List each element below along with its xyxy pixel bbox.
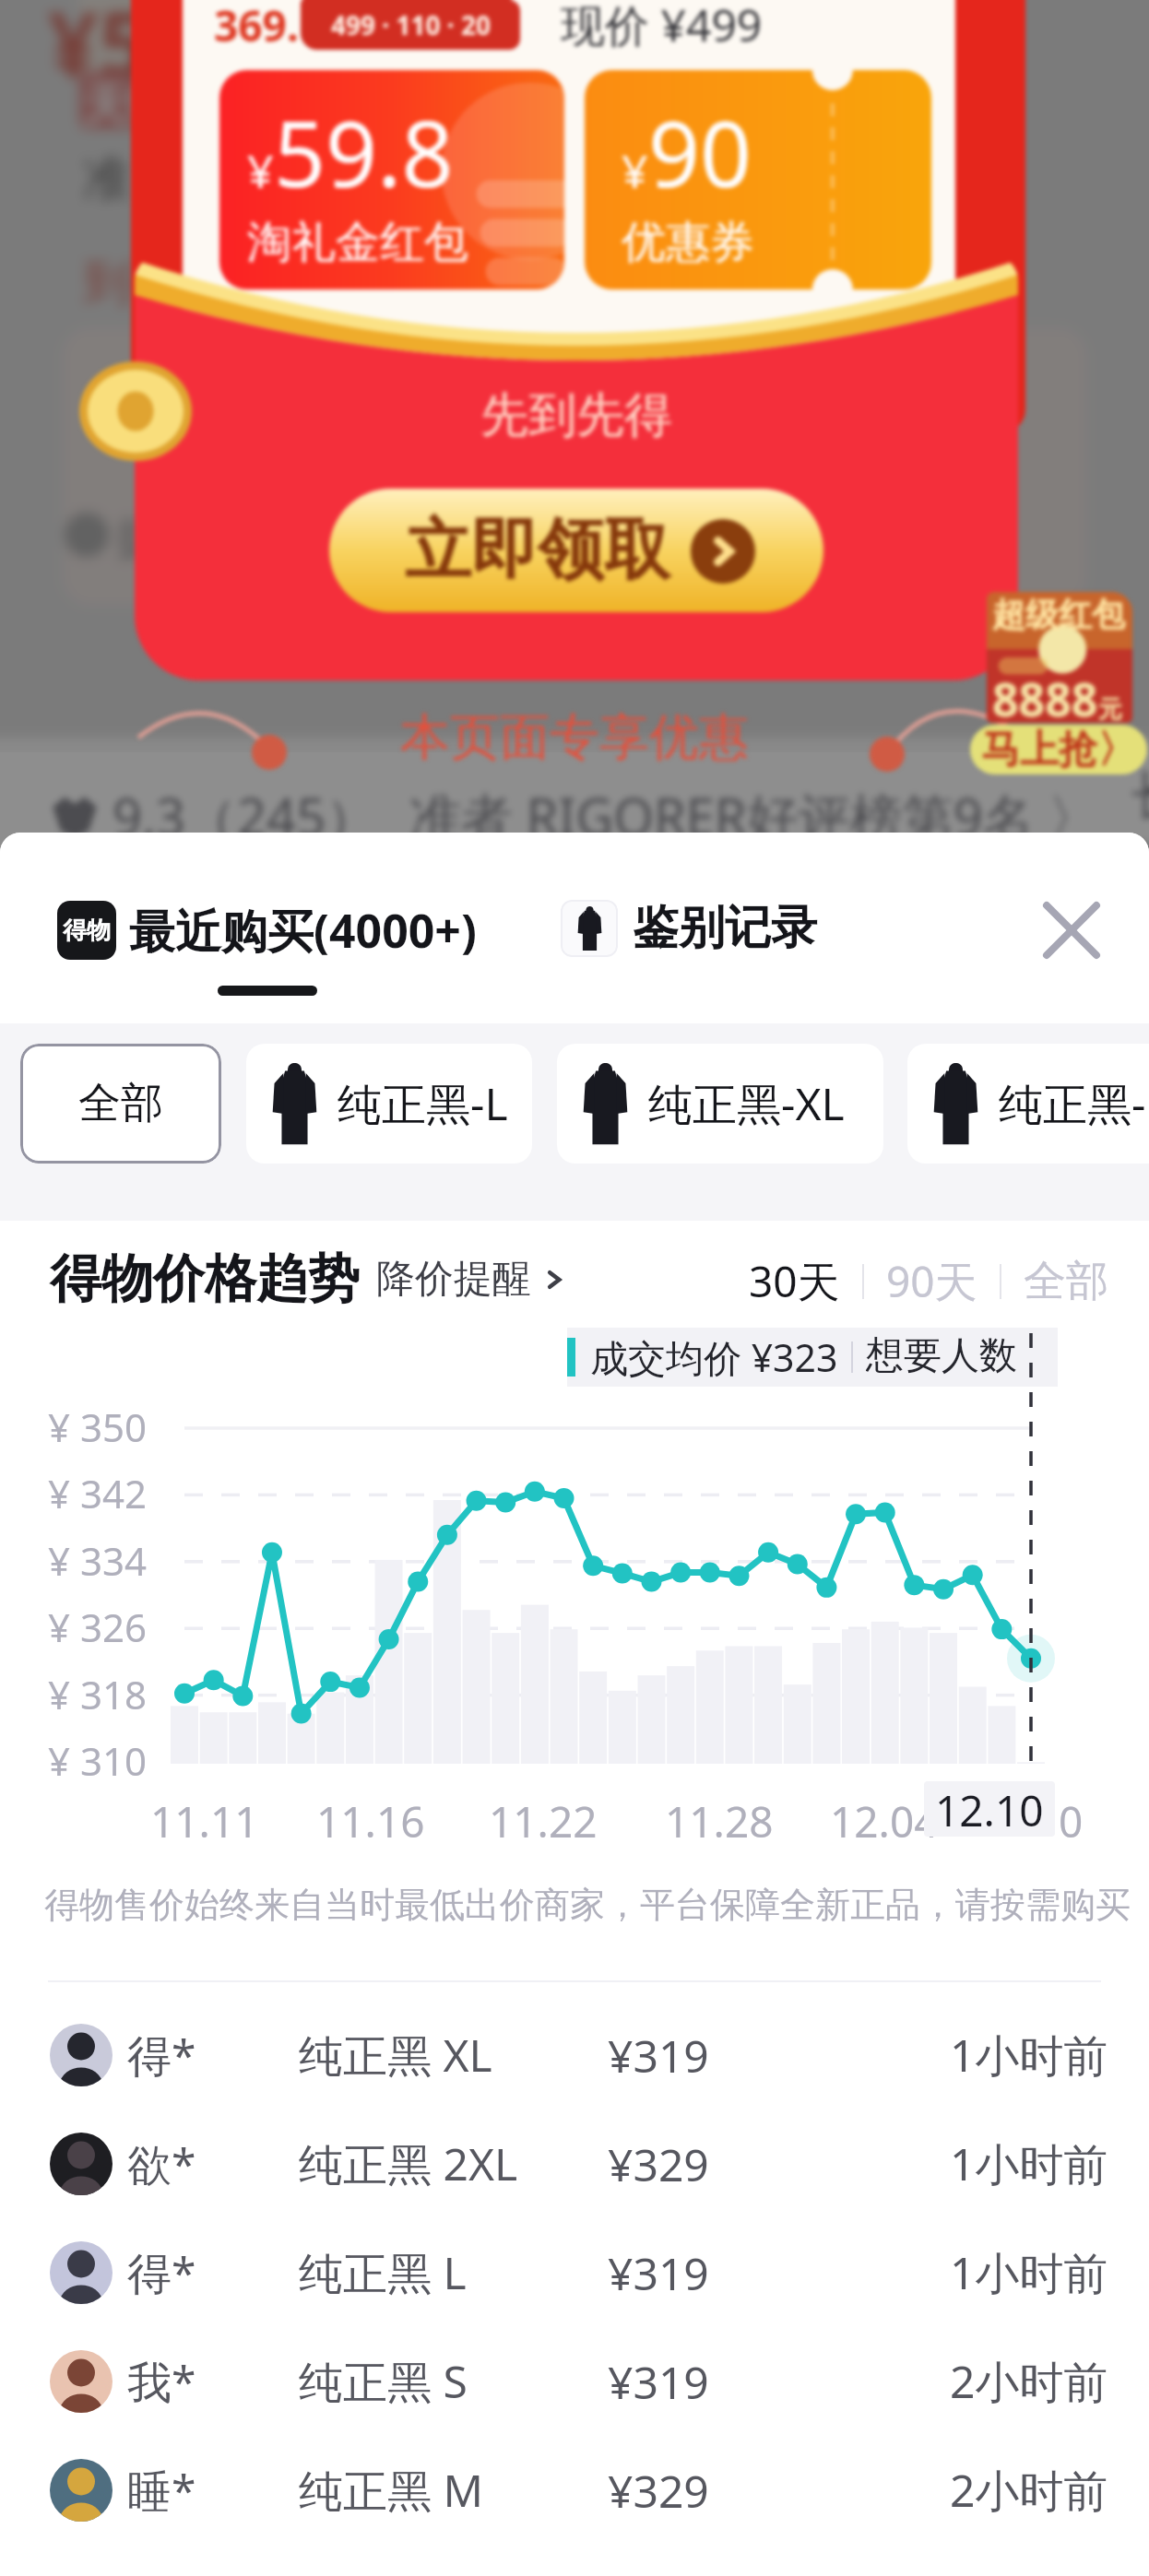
staticText: ¥5 (48, 0, 149, 102)
staticText: 0 (1059, 1792, 1084, 1850)
staticText: ¥319 (608, 2243, 709, 2303)
staticText: 90 (648, 90, 752, 213)
staticText: 12.10 (935, 1781, 1044, 1837)
staticText: 提 (116, 511, 160, 566)
staticText: 得* (127, 2025, 196, 2086)
staticText: ¥ 310 (48, 1734, 148, 1787)
button[interactable]: 30天 (749, 1252, 840, 1310)
staticText: 59.8 (274, 90, 454, 213)
staticText: ¥ 350 (48, 1400, 148, 1453)
staticText: 1小时前 (950, 2025, 1108, 2086)
staticText: ¥ 342 (48, 1467, 148, 1519)
button[interactable]: 全部 (20, 1044, 221, 1164)
button[interactable]: 得物 (57, 899, 477, 962)
staticText: ¥329 (608, 2461, 709, 2521)
staticText: 我* (127, 2351, 196, 2412)
staticText: 马上抢〉 (981, 726, 1136, 774)
staticText: 准者 RIGORER好评榜第9名 〉 (409, 781, 1100, 851)
staticText: 1小时前 (950, 2133, 1108, 2194)
staticText: 本页面专享优惠 (400, 706, 749, 769)
button[interactable]: 鉴别记录 (561, 899, 817, 957)
staticText: 30天 (749, 1252, 840, 1310)
staticText: 长款羽绒服热销 (1131, 763, 1149, 857)
staticText: 11.16 (316, 1792, 425, 1850)
staticText: 369. (214, 0, 299, 54)
staticText: 得物售价始终来自当时最低出价商家，平台保障全新正品，请按需购买 (44, 1883, 1131, 1927)
staticText: 天猫 (83, 77, 172, 133)
staticText: ¥ (247, 139, 274, 202)
button[interactable]: 欲* (0, 2133, 1149, 2241)
staticText: ¥319 (608, 2352, 709, 2412)
staticText: 11.22 (489, 1792, 598, 1850)
button[interactable]: 全部 (1024, 1255, 1108, 1308)
staticText: 纯正黑-L (338, 1073, 508, 1134)
staticText: ¥ 334 (48, 1534, 148, 1587)
staticText: 优惠券 (622, 215, 754, 270)
staticText: 现价 ¥499 (561, 0, 763, 55)
button[interactable]: 得* (0, 2241, 1149, 2350)
staticText: 鉴别记录 (633, 899, 817, 957)
staticText: 11.28 (665, 1792, 774, 1850)
button[interactable]: 纯正黑- (907, 1044, 1149, 1164)
staticText: 全部 (78, 1077, 163, 1130)
staticText: 到手 (83, 253, 179, 313)
staticText: 降价提醒 (376, 1255, 531, 1304)
staticText: 2小时前 (950, 2460, 1108, 2521)
staticText: 纯正黑 L (299, 2242, 467, 2303)
staticText: 想要人数 17 (866, 1328, 1058, 1387)
staticText: ¥ (622, 139, 648, 202)
button[interactable]: 90天 (886, 1252, 977, 1310)
button[interactable]: 降价提醒 (376, 1255, 568, 1304)
staticText: ¥ 318 (48, 1668, 148, 1720)
staticText: 成交均价 ¥323 (590, 1331, 838, 1383)
staticText: 12.04 (830, 1792, 939, 1850)
staticText: 8888 (992, 668, 1098, 723)
staticText: 得物 (63, 916, 111, 946)
staticText: 欲* (127, 2133, 196, 2194)
staticText: 超级红包 (992, 594, 1125, 635)
staticText: 纯正黑-XL (648, 1073, 845, 1134)
button[interactable]: 纯正黑-XL (557, 1044, 883, 1164)
staticText: 2小时前 (950, 2351, 1108, 2412)
button[interactable]: 立即领取 (329, 489, 823, 612)
staticText: 元 (1098, 694, 1122, 723)
staticText: ¥ 326 (48, 1601, 148, 1653)
staticText: 全部 (1024, 1255, 1108, 1308)
staticText: 得物价格趋势 (50, 1247, 360, 1312)
staticText: 纯正黑 S (299, 2351, 468, 2412)
staticText: ¥329 (608, 2134, 709, 2194)
staticText: 纯正黑 M (299, 2460, 484, 2521)
button[interactable]: 纯正黑-L (246, 1044, 532, 1164)
staticText: 睡* (127, 2460, 196, 2521)
staticText: 499 · 110 · 20 (331, 7, 491, 42)
staticText: 淘礼金红包 (247, 215, 468, 270)
staticText: 最近购买(4000+) (129, 899, 477, 962)
staticText: 纯正黑- (999, 1073, 1146, 1134)
staticText: 得* (127, 2242, 196, 2303)
button[interactable]: 睡* (0, 2459, 1149, 2568)
staticText: 先到先得 (480, 385, 672, 446)
staticText: ¥319 (608, 2026, 709, 2086)
staticText: 9.3（245） (113, 781, 378, 851)
button[interactable]: Close (1036, 895, 1107, 965)
staticText: 纯正黑 2XL (299, 2133, 518, 2194)
staticText: 准 (83, 149, 131, 210)
staticText: 立即领取 (405, 509, 670, 593)
button[interactable]: 得* (0, 2024, 1149, 2133)
staticText: 1小时前 (950, 2242, 1108, 2303)
staticText: 11.11 (150, 1792, 259, 1850)
staticText: 90天 (886, 1252, 977, 1310)
staticText: 纯正黑 XL (299, 2025, 492, 2086)
button[interactable]: 我* (0, 2350, 1149, 2459)
